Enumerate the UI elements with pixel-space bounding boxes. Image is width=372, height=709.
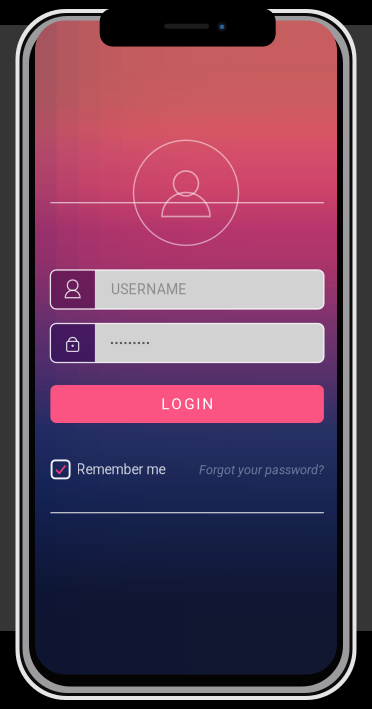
button[interactable]: Forgot your password?	[199, 463, 324, 477]
staticText: Remember me	[77, 461, 166, 478]
button[interactable]: LOGIN	[50, 385, 324, 423]
staticText: USERNAME	[111, 281, 186, 298]
button[interactable]: Remember me	[52, 460, 166, 478]
button[interactable]: Username	[50, 270, 324, 309]
button[interactable]: Password	[50, 323, 324, 362]
staticText: LOGIN	[161, 395, 213, 413]
staticText: Forgot your password?	[199, 463, 324, 477]
